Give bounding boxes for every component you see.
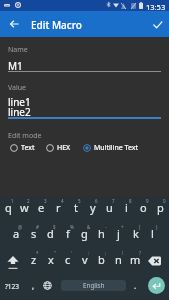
button[interactable]: * [25,248,42,274]
staticText: ( [139,224,141,230]
staticText: ?123 [5,282,19,291]
staticText: . [134,280,137,291]
button[interactable]: 4 [50,196,67,222]
staticText: Name [8,45,28,55]
staticText: x [48,252,54,267]
button[interactable]: ?123 [0,272,25,298]
button[interactable]: % [59,222,76,248]
staticText: Multiline Text [94,143,138,153]
button[interactable]: Enter [144,272,169,298]
button[interactable]: Save [145,12,169,36]
staticText: c [65,252,71,267]
button[interactable]: HEX [46,141,71,154]
staticText: o [140,200,147,215]
staticText: Value [8,83,27,93]
button[interactable]: Text [10,141,35,154]
staticText: a [13,226,20,241]
staticText: f [66,226,70,241]
staticText: t [74,200,78,215]
staticText: j [117,226,120,241]
staticText: : [88,250,90,256]
staticText: b [98,252,105,267]
staticText: English [83,281,105,290]
staticText: q [5,200,12,215]
staticText: ? [139,250,141,256]
staticText: m [130,252,141,267]
button[interactable]: ( [127,222,144,248]
staticText: y [90,200,96,215]
staticText: u [106,200,113,215]
staticText: n [115,252,122,267]
button[interactable]: . [127,272,144,298]
button[interactable]: 3 [33,196,50,222]
staticText: h [98,226,105,241]
staticText: 6 [95,198,98,204]
staticText: 8 [129,198,132,204]
staticText: 9 [146,198,149,204]
staticText: 13:53 [146,2,166,12]
staticText: r [56,200,61,215]
button[interactable]: 6 [84,196,101,222]
staticText: # [36,224,39,230]
staticText: ! [122,250,124,256]
staticText: line1 line2 [8,95,31,119]
button[interactable]: ! [110,248,127,274]
staticText: M1 [8,59,23,73]
button[interactable]: ? [127,248,144,274]
staticText: * [36,250,39,256]
staticText: , [32,280,35,291]
button[interactable]: 2 [16,196,33,222]
staticText: 0 [163,198,166,204]
button[interactable]: ) [144,222,161,248]
button[interactable]: , [25,272,42,298]
staticText: @ [18,224,23,230]
staticText: e [38,200,45,215]
staticText: Edit Macro [31,18,82,32]
button[interactable]: " [42,248,59,274]
staticText: 5 [78,198,81,204]
button[interactable]: 8 [118,196,135,222]
staticText: + [121,224,124,230]
button[interactable]: 1 [0,196,16,222]
staticText: p [157,200,164,215]
staticText: ) [156,224,158,230]
staticText: l [151,226,154,241]
button[interactable]: Switch language [42,272,59,298]
button[interactable]: English [59,272,127,298]
staticText: Text [21,143,35,153]
button[interactable]: + [110,222,127,248]
button[interactable]: ; [93,248,110,274]
staticText: % [70,224,74,230]
staticText: HEX [57,143,71,153]
button[interactable]: 9 [135,196,152,222]
button[interactable]: Shift [0,248,25,274]
staticText: - [105,224,107,230]
staticText: " [54,250,56,256]
staticText: ' [71,250,73,256]
staticText: v [82,252,88,267]
staticText: z [31,252,37,267]
staticText: 4 [61,198,64,204]
staticText: k [133,226,139,241]
button[interactable]: : [76,248,93,274]
button[interactable]: Multiline Text [83,141,138,154]
button[interactable]: 7 [101,196,118,222]
button[interactable]: $ [42,222,59,248]
button[interactable]: 0 [152,196,169,222]
staticText: w [20,200,29,215]
button[interactable]: & [76,222,93,248]
staticText: $ [53,224,56,230]
button[interactable]: ' [59,248,76,274]
button[interactable]: Navigate up [2,12,26,36]
staticText: d [47,226,54,241]
button[interactable]: Delete [144,248,169,274]
staticText: 2 [27,198,30,204]
staticText: 7 [112,198,115,204]
button[interactable]: @ [8,222,25,248]
staticText: 3 [44,198,47,204]
button[interactable]: # [25,222,42,248]
staticText: i [125,200,128,215]
button[interactable]: - [93,222,110,248]
button[interactable]: 5 [67,196,84,222]
staticText: & [87,224,91,230]
